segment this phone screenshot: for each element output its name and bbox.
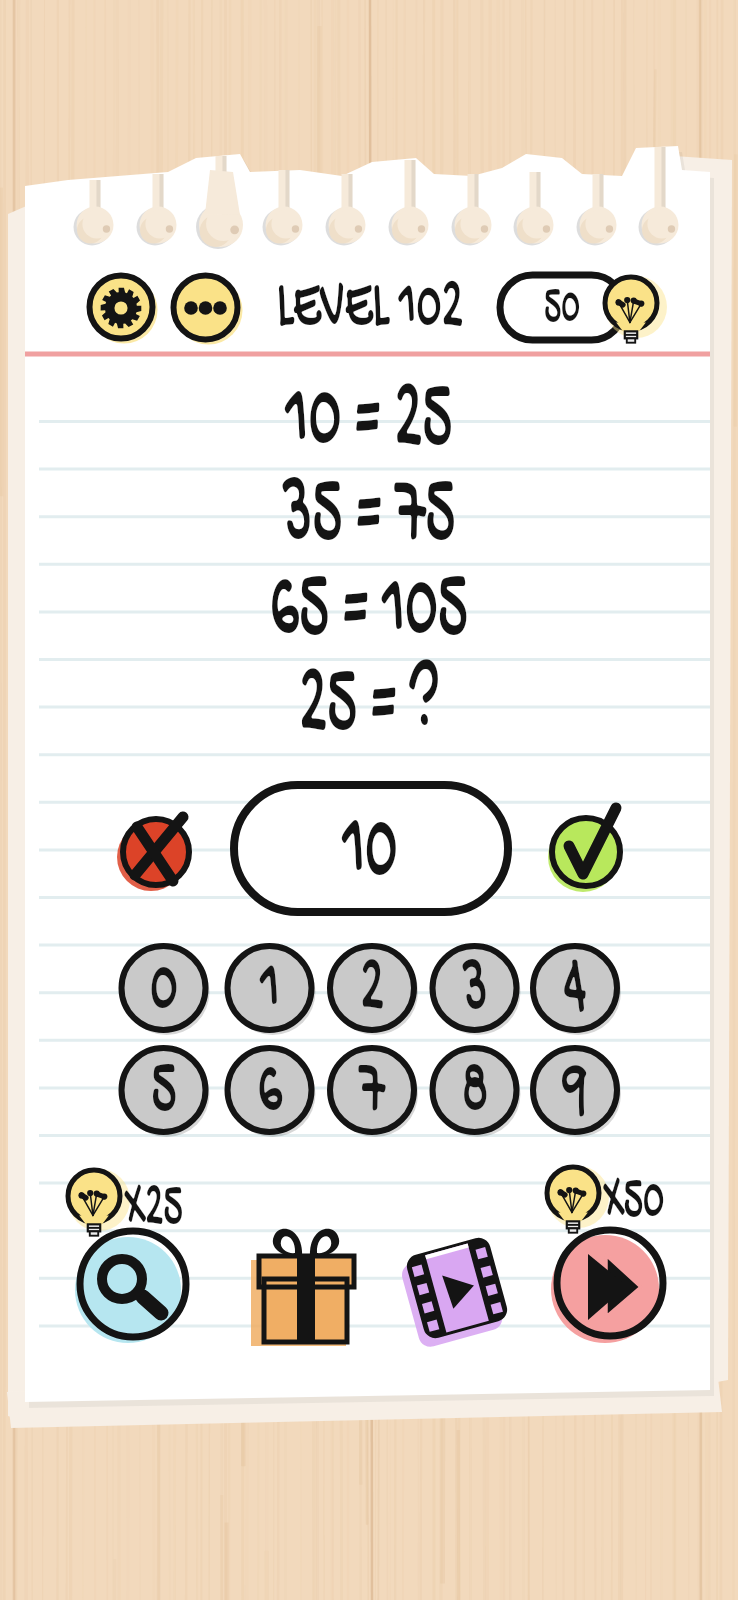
button[interactable]: Hints: 50: [505, 276, 655, 340]
staticText: 4: [404, 938, 738, 1043]
button[interactable]: Digit 1: [227, 945, 313, 1031]
staticText: 3: [304, 938, 645, 1043]
button[interactable]: Skip level: [554, 1230, 662, 1338]
button[interactable]: Digit 6: [227, 1047, 313, 1133]
staticText: 1: [99, 938, 440, 1043]
staticText: 10 = 25: [205, 358, 533, 487]
button[interactable]: Answer 10: [234, 785, 508, 912]
button[interactable]: Digit 2: [329, 945, 415, 1031]
button[interactable]: More options: [171, 274, 239, 342]
staticText: 7: [201, 1040, 542, 1145]
staticText: 25 = ?: [205, 643, 533, 772]
button[interactable]: Watch video: [400, 1234, 512, 1344]
button[interactable]: Digit 9: [532, 1047, 618, 1133]
button[interactable]: Digit 8: [432, 1047, 518, 1133]
staticText: 6: [99, 1040, 440, 1145]
staticText: 9: [404, 1040, 738, 1145]
staticText: 50: [391, 274, 732, 345]
staticText: 5: [0, 1040, 334, 1145]
staticText: 35 = 75: [205, 453, 533, 582]
button[interactable]: Wrong: [120, 786, 190, 856]
button[interactable]: Hint: [77, 1232, 185, 1340]
staticText: LEVEL 102: [199, 261, 540, 356]
button[interactable]: Correct: [550, 786, 620, 856]
staticText: 10: [215, 785, 525, 919]
button[interactable]: Digit 0: [121, 945, 207, 1031]
staticText: 2: [201, 938, 542, 1043]
button[interactable]: Digit 7: [329, 1047, 415, 1133]
button[interactable]: Gift: [252, 1250, 360, 1346]
staticText: 65 = 105: [205, 548, 533, 677]
button[interactable]: Digit 3: [432, 945, 518, 1031]
staticText: X25: [0, 1169, 324, 1250]
staticText: X50: [463, 1162, 738, 1243]
button[interactable]: Digit 4: [532, 945, 618, 1031]
staticText: 0: [0, 938, 334, 1043]
button[interactable]: Digit 5: [121, 1047, 207, 1133]
button[interactable]: Settings: [88, 274, 156, 342]
staticText: 8: [304, 1040, 645, 1145]
